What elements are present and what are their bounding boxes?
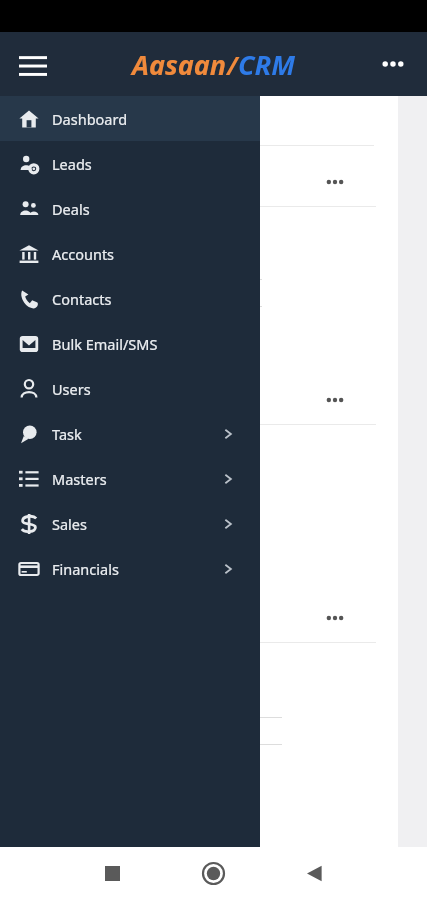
staticText: Financials bbox=[52, 559, 119, 579]
button[interactable]: Recent apps bbox=[62, 847, 163, 900]
button[interactable]: Card options bbox=[16, 594, 376, 794]
button[interactable]: Leads bbox=[0, 141, 260, 186]
button[interactable]: Sales bbox=[0, 501, 260, 546]
button[interactable]: More options bbox=[373, 44, 413, 84]
staticText: Sales bbox=[52, 514, 87, 534]
staticText: Dashboard bbox=[52, 109, 128, 129]
button[interactable]: Card options bbox=[320, 385, 350, 415]
button[interactable]: Accounts bbox=[0, 231, 260, 276]
button[interactable]: Dashboard bbox=[0, 96, 260, 141]
staticText: Task bbox=[52, 424, 82, 444]
staticText: Task Follow Up bbox=[18, 112, 115, 131]
button[interactable]: Back bbox=[264, 847, 365, 900]
button[interactable]: Card options bbox=[16, 158, 376, 358]
staticText: Contacts bbox=[52, 289, 112, 309]
staticText: Users bbox=[52, 379, 91, 399]
button[interactable]: Masters bbox=[0, 456, 260, 501]
button[interactable]: Card options bbox=[320, 603, 350, 633]
staticText: / bbox=[227, 48, 238, 82]
staticText: Masters bbox=[52, 469, 107, 489]
button[interactable]: Deals bbox=[0, 186, 260, 231]
button[interactable]: Task bbox=[0, 411, 260, 456]
button[interactable]: Financials bbox=[0, 546, 260, 591]
button[interactable]: Card options bbox=[320, 167, 350, 197]
button[interactable]: Bulk Email/SMS bbox=[0, 321, 260, 366]
button[interactable]: Open navigation menu bbox=[12, 43, 54, 85]
button[interactable]: Card options bbox=[16, 376, 376, 576]
button[interactable]: Users bbox=[0, 366, 260, 411]
button[interactable]: Contacts bbox=[0, 276, 260, 321]
staticText: Deals bbox=[52, 199, 90, 219]
staticText: Leads bbox=[52, 154, 92, 174]
button[interactable]: Home bbox=[163, 847, 264, 900]
staticText: Bulk Email/SMS bbox=[52, 334, 158, 354]
staticText: Accounts bbox=[52, 244, 115, 264]
staticText: CRM bbox=[238, 46, 296, 83]
staticText: Aasaan bbox=[132, 46, 227, 83]
